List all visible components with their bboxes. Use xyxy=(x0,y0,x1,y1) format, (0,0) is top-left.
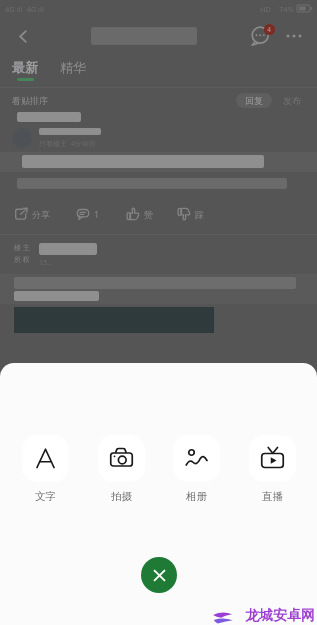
button[interactable]: 精华 xyxy=(60,62,86,78)
staticText: 发布 xyxy=(283,95,301,106)
staticText: 直播 xyxy=(262,490,283,503)
staticText: 1 xyxy=(94,208,100,220)
button[interactable]: 踩 xyxy=(177,205,204,223)
staticText: 相册 xyxy=(186,490,207,503)
button[interactable]: 1 xyxy=(76,205,100,223)
staticText: 楼 主 xyxy=(14,243,30,253)
staticText: 所 权 xyxy=(14,255,30,265)
staticText: 精华 xyxy=(60,59,86,75)
staticText: 回复 xyxy=(245,95,263,106)
staticText: 文字 xyxy=(35,490,56,503)
staticText: 踩 xyxy=(195,209,204,220)
button[interactable]: 直播 xyxy=(241,435,303,503)
button[interactable]: Close xyxy=(141,557,177,593)
button[interactable]: Back xyxy=(9,22,37,50)
button[interactable]: 相册 xyxy=(165,435,227,503)
button[interactable]: 文字 xyxy=(14,435,76,503)
button[interactable]: 回复 xyxy=(236,93,272,108)
button[interactable]: 拍摄 xyxy=(90,435,152,503)
staticText: 74% xyxy=(279,4,294,14)
button[interactable]: 最新 xyxy=(12,59,38,81)
staticText: 4G ıll 4G ıll xyxy=(5,4,44,14)
button[interactable]: More options xyxy=(280,22,308,50)
button[interactable]: 赞 xyxy=(126,205,153,223)
staticText: 15... xyxy=(39,258,53,268)
button[interactable]: Messages xyxy=(246,21,276,51)
staticText: 分享 xyxy=(32,209,50,220)
staticText: 最新 xyxy=(12,59,38,75)
staticText: 龙城安卓网 xyxy=(245,607,315,625)
button[interactable]: 分享 xyxy=(14,205,50,223)
staticText: 拍摄 xyxy=(111,490,132,503)
staticText: 看贴排序 xyxy=(12,95,48,106)
staticText: 4 xyxy=(267,25,272,35)
staticText: HD xyxy=(260,4,272,14)
staticText: 只看楼主 4分钟前 xyxy=(39,139,96,149)
button[interactable]: 发布 xyxy=(279,93,305,108)
staticText: 赞 xyxy=(144,209,153,220)
